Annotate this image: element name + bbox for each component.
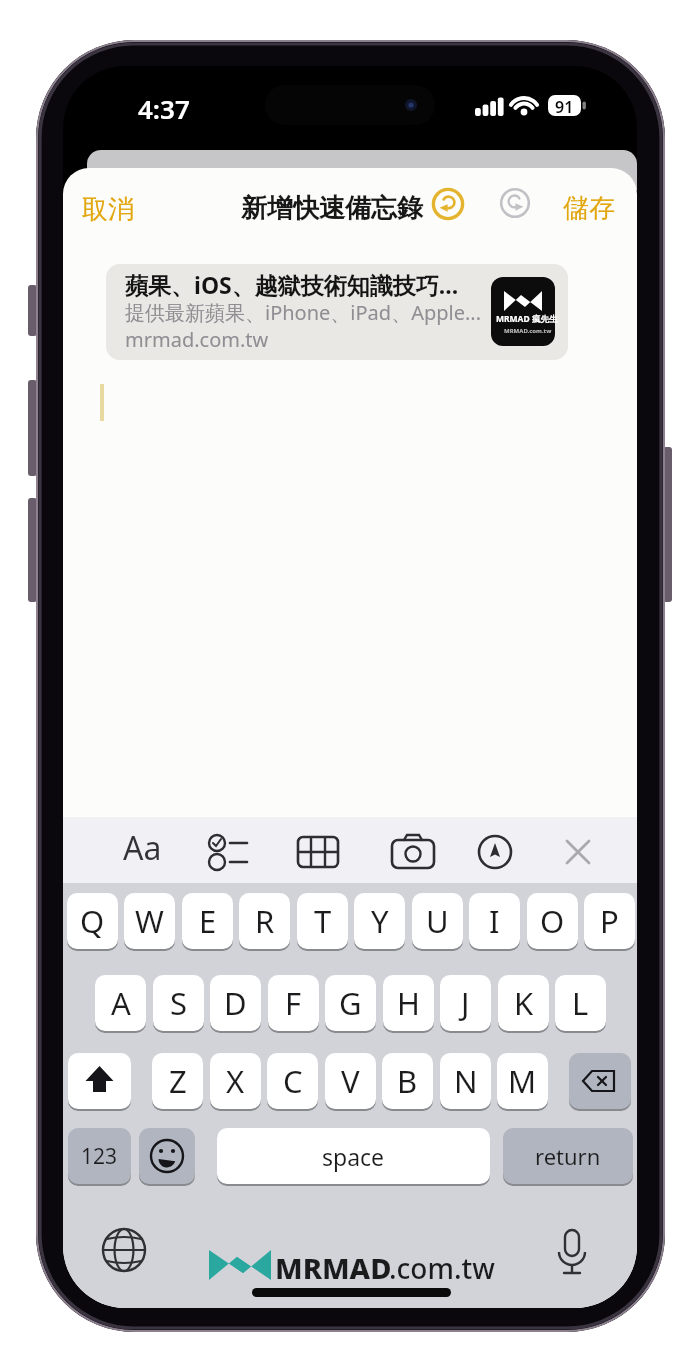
button[interactable]: E	[182, 893, 233, 949]
button[interactable]: 123	[68, 1128, 131, 1184]
staticText: D	[224, 982, 247, 1024]
button[interactable]: D	[210, 975, 261, 1031]
button[interactable]	[106, 264, 568, 360]
staticText: A	[111, 982, 131, 1024]
staticText: L	[572, 982, 589, 1024]
staticText: O	[540, 900, 565, 942]
staticText: 4:37	[138, 91, 190, 126]
button[interactable]: N	[440, 1053, 491, 1109]
staticText: C	[283, 1060, 303, 1102]
button[interactable]	[545, 1225, 599, 1279]
button[interactable]	[203, 828, 255, 872]
button[interactable]: space	[217, 1128, 490, 1184]
staticText: .com.tw	[389, 1249, 495, 1287]
staticText: T	[314, 900, 332, 942]
button[interactable]: Q	[67, 893, 118, 949]
staticText: Q	[80, 900, 105, 942]
button[interactable]	[499, 187, 533, 221]
staticText: 91	[555, 96, 574, 118]
staticText: M	[508, 1060, 537, 1102]
button[interactable]	[139, 1128, 195, 1184]
staticText: 取消	[82, 193, 134, 226]
staticText: V	[341, 1060, 360, 1102]
button[interactable]: B	[382, 1053, 433, 1109]
staticText: I	[489, 900, 500, 942]
button[interactable]: L	[555, 975, 606, 1031]
staticText: return	[535, 1141, 601, 1171]
button[interactable]	[68, 1053, 131, 1109]
staticText: MRMAD.com.tw	[504, 327, 552, 335]
button[interactable]	[292, 828, 344, 872]
staticText: N	[454, 1060, 478, 1102]
staticText: U	[426, 900, 449, 942]
button[interactable]: A	[95, 975, 146, 1031]
button[interactable]: X	[210, 1053, 261, 1109]
button[interactable]: U	[412, 893, 463, 949]
staticText: X	[226, 1060, 245, 1102]
staticText: 儲存	[563, 192, 615, 225]
button[interactable]: T	[297, 893, 348, 949]
staticText: 蘋果、iOS、越獄技術知識技巧...	[125, 269, 459, 300]
button[interactable]: 取消	[75, 188, 127, 221]
staticText: G	[339, 982, 362, 1024]
staticText: 新增快速備忘錄	[241, 192, 423, 225]
staticText: MRMAD	[275, 1248, 392, 1287]
button[interactable]	[97, 1223, 151, 1277]
staticText: Y	[371, 900, 389, 942]
staticText: Z	[169, 1060, 187, 1102]
staticText: S	[170, 982, 188, 1024]
button[interactable]: O	[527, 893, 578, 949]
staticText: 提供最新蘋果、iPhone、iPad、Apple...	[125, 299, 482, 326]
staticText: mrmad.com.tw	[125, 326, 269, 353]
staticText: P	[600, 900, 619, 942]
staticText: Aa	[123, 826, 162, 870]
button[interactable]: return	[503, 1128, 633, 1184]
button[interactable]	[387, 828, 439, 872]
staticText: F	[285, 982, 302, 1024]
staticText: K	[514, 982, 534, 1024]
button[interactable]: F	[268, 975, 319, 1031]
staticText: R	[255, 900, 275, 942]
staticText: H	[397, 982, 420, 1024]
button[interactable]: C	[267, 1053, 318, 1109]
button[interactable]: I	[469, 893, 520, 949]
button[interactable]: V	[325, 1053, 376, 1109]
button[interactable]: S	[153, 975, 204, 1031]
button[interactable]: W	[124, 893, 175, 949]
button[interactable]	[469, 828, 521, 872]
staticText: B	[397, 1060, 418, 1102]
staticText: 123	[81, 1142, 118, 1171]
button[interactable]: K	[498, 975, 549, 1031]
button[interactable]: G	[325, 975, 376, 1031]
button[interactable]: 儲存	[557, 188, 609, 221]
button[interactable]: M	[497, 1053, 548, 1109]
staticText: space	[322, 1141, 385, 1172]
staticText: J	[461, 982, 470, 1024]
staticText: W	[135, 900, 164, 942]
staticText: E	[199, 900, 217, 942]
button[interactable]	[569, 1053, 631, 1109]
button[interactable]: Y	[354, 893, 405, 949]
button[interactable]	[431, 187, 465, 221]
button[interactable]: J	[440, 975, 491, 1031]
button[interactable]: H	[383, 975, 434, 1031]
button[interactable]: Z	[152, 1053, 203, 1109]
button[interactable]	[552, 828, 604, 872]
button[interactable]: P	[584, 893, 635, 949]
button[interactable]: Aa	[121, 826, 177, 874]
staticText: MRMAD 瘋先生	[496, 313, 558, 325]
button[interactable]: R	[239, 893, 290, 949]
